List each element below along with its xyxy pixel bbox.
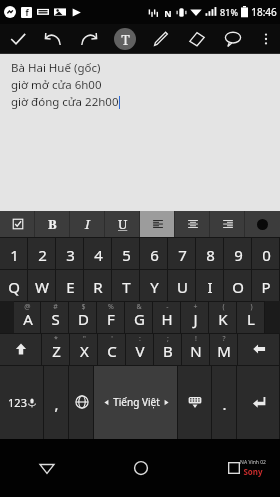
staticText: 1 bbox=[10, 245, 19, 265]
button[interactable]: U bbox=[105, 211, 140, 237]
button[interactable]: Eraser bbox=[179, 24, 215, 54]
button[interactable]: Redo bbox=[71, 24, 107, 54]
staticText: L bbox=[247, 309, 255, 329]
staticText: J bbox=[193, 309, 198, 329]
button[interactable]: 1 bbox=[0, 237, 28, 269]
button[interactable]: Align right bbox=[210, 211, 245, 237]
button[interactable]: % bbox=[97, 301, 125, 333]
staticText: * bbox=[54, 334, 58, 344]
button[interactable]: Comment bbox=[215, 24, 251, 54]
button[interactable]: ? bbox=[210, 333, 238, 365]
staticText: K bbox=[218, 309, 228, 329]
button[interactable]: Text colour bbox=[245, 211, 280, 237]
button[interactable]: 5 bbox=[112, 237, 140, 269]
button[interactable]: ) bbox=[237, 301, 265, 333]
button[interactable]: : bbox=[126, 333, 154, 365]
staticText: $ bbox=[81, 302, 86, 312]
staticText: Y bbox=[150, 277, 159, 297]
staticText: ) bbox=[250, 302, 253, 312]
staticText: giờ mở cửa 6h00 bbox=[11, 77, 102, 93]
button[interactable]: Checklist bbox=[0, 211, 35, 237]
staticText: ; bbox=[167, 334, 169, 344]
button[interactable]: W bbox=[28, 269, 56, 301]
button[interactable]: Back bbox=[0, 439, 94, 497]
button[interactable]: Backspace bbox=[238, 333, 280, 365]
button[interactable]: $ bbox=[69, 301, 97, 333]
button[interactable]: Enter bbox=[237, 365, 280, 439]
button[interactable]: U bbox=[168, 269, 196, 301]
staticText: 0 bbox=[262, 245, 271, 265]
button[interactable]: 8 bbox=[196, 237, 224, 269]
button[interactable]: 4 bbox=[84, 237, 112, 269]
button[interactable]: Pen bbox=[143, 24, 179, 54]
staticText: T bbox=[121, 30, 130, 49]
button[interactable]: Undo bbox=[35, 24, 71, 54]
button[interactable]: Change language bbox=[69, 365, 94, 439]
staticText: 8 bbox=[206, 245, 215, 265]
button[interactable]: More options bbox=[251, 24, 280, 54]
button[interactable]: 0 bbox=[252, 237, 280, 269]
staticText: 3 bbox=[66, 245, 75, 265]
button[interactable]: T bbox=[107, 24, 143, 54]
staticText: D bbox=[78, 309, 89, 329]
button[interactable]: E bbox=[56, 269, 84, 301]
staticText: % bbox=[108, 302, 114, 312]
staticText: G bbox=[134, 309, 145, 329]
staticText: 7 bbox=[178, 245, 187, 265]
button[interactable]: Recents bbox=[187, 439, 280, 497]
staticText: 81% bbox=[220, 6, 238, 18]
button[interactable]: + bbox=[181, 301, 209, 333]
button[interactable]: P bbox=[252, 269, 280, 301]
button[interactable]: Align left bbox=[140, 211, 175, 237]
button[interactable]: R bbox=[84, 269, 112, 301]
button[interactable]: , bbox=[44, 365, 69, 439]
staticText: Bà Hai Huế (gốc) bbox=[11, 60, 101, 76]
button[interactable]: B bbox=[35, 211, 70, 237]
staticText: 18:46 bbox=[251, 5, 277, 19]
staticText: I bbox=[85, 215, 90, 233]
staticText: 123 bbox=[8, 395, 27, 410]
button[interactable]: ' bbox=[98, 333, 126, 365]
button[interactable]: Numbers and voice input bbox=[0, 365, 44, 439]
button[interactable]: Done bbox=[0, 24, 35, 54]
button[interactable]: Shift bbox=[0, 333, 42, 365]
staticText: N bbox=[190, 341, 202, 361]
staticText: E bbox=[66, 277, 75, 297]
button[interactable]: I bbox=[196, 269, 224, 301]
staticText: I bbox=[207, 277, 213, 297]
button[interactable]: 2 bbox=[28, 237, 56, 269]
button[interactable]: Align center bbox=[175, 211, 210, 237]
button[interactable]: ! bbox=[182, 333, 210, 365]
button[interactable]: & bbox=[125, 301, 153, 333]
staticText: 9 bbox=[234, 245, 243, 265]
button[interactable]: Home bbox=[94, 439, 187, 497]
staticText: B bbox=[163, 341, 173, 361]
button[interactable]: @ bbox=[14, 301, 41, 333]
button[interactable]: 9 bbox=[224, 237, 252, 269]
button[interactable]: O bbox=[224, 269, 252, 301]
button[interactable]: 6 bbox=[140, 237, 168, 269]
button[interactable]: " bbox=[70, 333, 98, 365]
button[interactable]: 3 bbox=[56, 237, 84, 269]
button[interactable]: Q bbox=[0, 269, 28, 301]
staticText: + bbox=[193, 302, 198, 312]
staticText: " bbox=[83, 334, 86, 344]
staticText: C bbox=[107, 341, 117, 361]
staticText: , bbox=[54, 394, 59, 414]
staticText: M bbox=[217, 341, 231, 361]
button[interactable]: ; bbox=[154, 333, 182, 365]
button[interactable]: Y bbox=[140, 269, 168, 301]
staticText: V bbox=[135, 341, 145, 361]
button[interactable]: * bbox=[42, 333, 70, 365]
button[interactable]: # bbox=[41, 301, 69, 333]
button[interactable]: Tiếng Việt bbox=[94, 365, 178, 439]
staticText: S bbox=[51, 309, 60, 329]
button[interactable]: T bbox=[112, 269, 140, 301]
staticText: N bbox=[164, 7, 172, 18]
button[interactable]: ( bbox=[209, 301, 237, 333]
button[interactable]: 7 bbox=[168, 237, 196, 269]
button[interactable]: - bbox=[153, 301, 181, 333]
button[interactable]: . bbox=[212, 365, 237, 439]
button[interactable]: Hide keyboard bbox=[178, 365, 212, 439]
button[interactable]: I bbox=[70, 211, 105, 237]
